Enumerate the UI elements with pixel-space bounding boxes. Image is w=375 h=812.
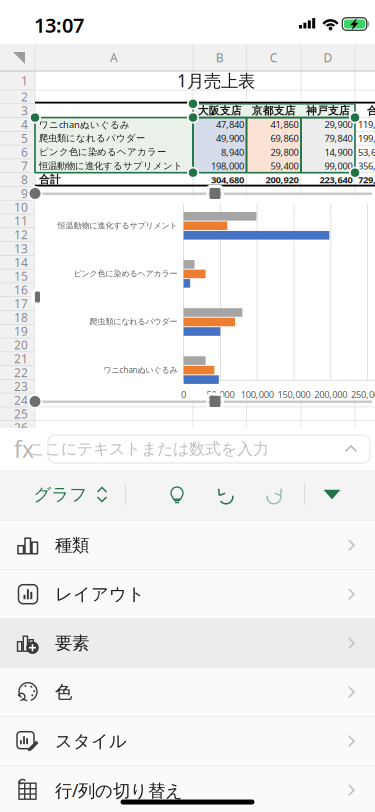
staticText: 24	[14, 392, 28, 408]
staticText: 12	[14, 227, 28, 243]
staticText: C	[270, 49, 278, 65]
button[interactable]: レイアウト	[0, 570, 375, 618]
staticText: ここにテキストまたは数式を入力	[29, 439, 269, 459]
staticText: B	[216, 49, 224, 65]
staticText: 1月売上表	[177, 69, 255, 92]
staticText: グラフ	[33, 484, 87, 505]
button[interactable]: Hide toolbar	[312, 474, 352, 514]
staticText: 14,900	[324, 146, 352, 158]
staticText: 8	[21, 172, 28, 187]
staticText: 119,600	[358, 118, 375, 131]
staticText: 9	[21, 185, 28, 201]
staticText: 199,600	[358, 132, 375, 144]
staticText: 4	[21, 116, 28, 132]
staticText: 29,800	[270, 146, 298, 158]
staticText: 49,900	[216, 132, 244, 144]
staticText: ワニchanぬいぐるみ	[103, 364, 177, 375]
staticText: 3	[21, 103, 28, 119]
button[interactable]: グラフ	[20, 474, 120, 514]
button[interactable]: Undo	[208, 476, 244, 512]
staticText: 行/列の切り替え	[55, 779, 183, 802]
staticText: 304,680	[211, 173, 244, 186]
staticText: 26	[14, 420, 28, 435]
staticText: 1	[21, 72, 28, 88]
staticText: レイアウト	[55, 584, 145, 605]
staticText: 恒温動物に進化するサプリメント	[39, 160, 183, 172]
button[interactable]: 種類	[0, 521, 375, 569]
staticText: 150,000	[277, 388, 310, 401]
staticText: スタイル	[55, 731, 127, 752]
staticText: 41,860	[270, 118, 298, 131]
staticText: 23	[14, 378, 28, 394]
staticText: 合計	[367, 104, 375, 117]
staticText: 13	[14, 240, 28, 256]
staticText: 198,000	[211, 160, 244, 172]
staticText: 爬虫類になれるパウダー	[39, 132, 145, 144]
staticText: 50,000	[206, 388, 234, 401]
staticText: 20	[14, 337, 28, 353]
staticText: 16	[14, 282, 28, 298]
staticText: 729,240	[358, 173, 375, 186]
staticText: 色	[55, 682, 72, 703]
staticText: 250,000	[351, 388, 375, 401]
staticText: 59,400	[270, 160, 298, 172]
staticText: 356,400	[358, 160, 375, 172]
staticText: 47,840	[216, 118, 244, 131]
staticText: 14	[14, 254, 28, 270]
button[interactable]: ここにテキストまたは数式を入力	[48, 435, 370, 463]
staticText: 99,000	[324, 160, 352, 172]
staticText: 79,840	[324, 132, 352, 144]
button[interactable]: Redo	[256, 476, 292, 512]
staticText: 7	[21, 158, 28, 174]
staticText: 21	[14, 351, 28, 367]
button[interactable]: Function	[2, 430, 46, 468]
staticText: 200,000	[314, 388, 347, 401]
staticText: 2	[21, 89, 28, 105]
staticText: 6	[21, 144, 28, 160]
staticText: ワニchanぬいぐるみ	[39, 118, 130, 131]
staticText: 25	[14, 406, 28, 422]
staticText: 10	[14, 199, 28, 215]
staticText: 恒温動物に進化するサプリメント	[57, 221, 177, 230]
staticText: ピンク色に染めるヘアカラー	[39, 146, 166, 158]
staticText: 要素	[55, 633, 89, 654]
staticText: 5	[21, 130, 28, 146]
staticText: 18	[14, 309, 28, 325]
staticText: 合計	[39, 173, 61, 186]
staticText: 爬虫類になれるパウダー	[89, 317, 177, 327]
button[interactable]: 要素	[0, 619, 375, 667]
staticText: 19	[14, 323, 28, 339]
staticText: 神戸支店	[306, 104, 350, 117]
staticText: 200,920	[265, 173, 298, 186]
staticText: 0	[181, 388, 186, 401]
staticText: D	[323, 49, 332, 65]
button[interactable]: スタイル	[0, 717, 375, 765]
staticText: 京都支店	[252, 104, 296, 117]
staticText: 22	[14, 364, 28, 380]
staticText: 13:07	[34, 12, 84, 38]
staticText: 100,000	[241, 388, 274, 401]
staticText: 11	[14, 213, 28, 229]
staticText: 29,900	[324, 118, 352, 131]
button[interactable]: 行/列の切り替え	[0, 766, 375, 812]
staticText: ピンク色に染めるヘアカラー	[73, 269, 177, 278]
staticText: 種類	[55, 535, 89, 556]
staticText: 大阪支店	[198, 104, 242, 117]
staticText: A	[110, 49, 118, 65]
staticText: 69,860	[270, 132, 298, 144]
staticText: 223,640	[319, 173, 352, 186]
staticText: 8,940	[221, 146, 244, 158]
button[interactable]: 色	[0, 668, 375, 716]
staticText: 53,640	[358, 146, 375, 158]
button[interactable]: Smart lookup	[159, 476, 195, 512]
staticText: fx	[14, 434, 34, 464]
staticText: 17	[14, 296, 28, 311]
staticText: 15	[14, 268, 28, 284]
